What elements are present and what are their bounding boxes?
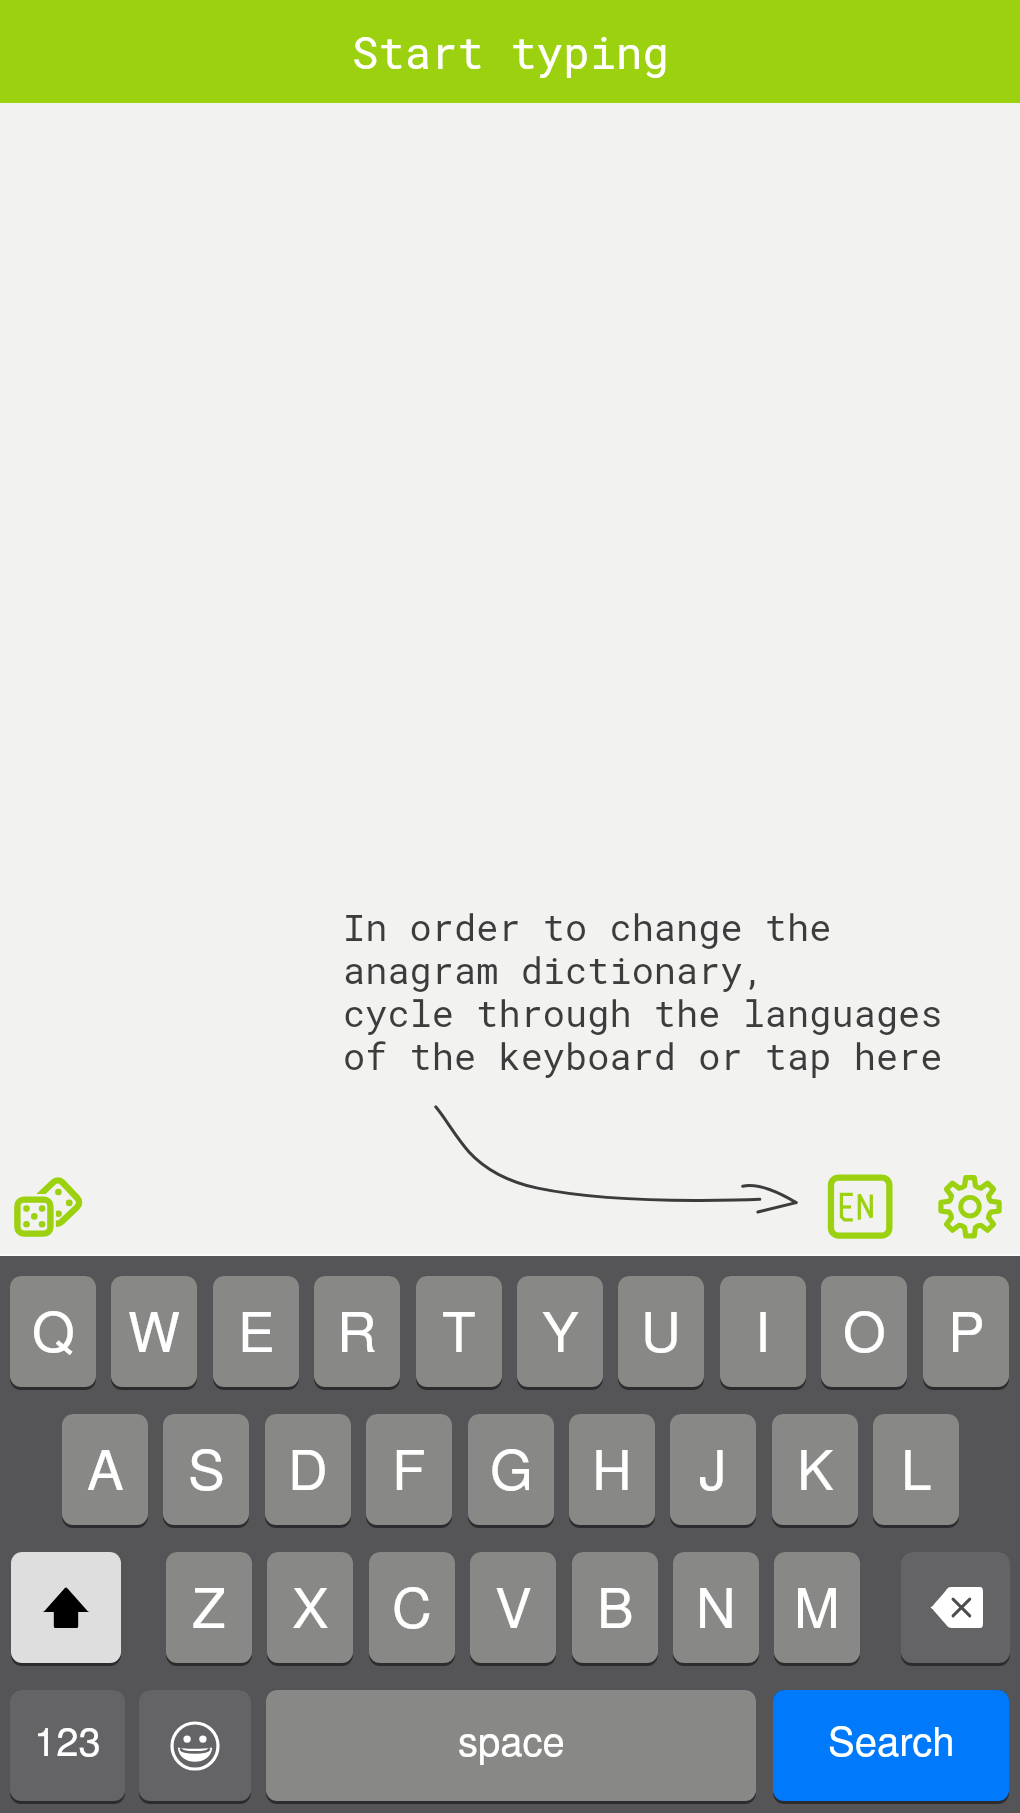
staticText: J — [699, 1427, 727, 1506]
staticText: L — [901, 1427, 932, 1506]
button[interactable]: Change keyboard language, English — [818, 1166, 902, 1248]
staticText: U — [641, 1289, 681, 1368]
button[interactable]: F — [366, 1414, 452, 1525]
staticText: H — [592, 1427, 632, 1506]
button[interactable]: Z — [166, 1552, 252, 1663]
staticText: M — [794, 1565, 840, 1644]
staticText: In order to change the anagram dictionar… — [343, 902, 943, 1080]
staticText: T — [442, 1289, 476, 1368]
button[interactable]: U — [618, 1276, 704, 1387]
button[interactable]: I — [720, 1276, 806, 1387]
button[interactable]: Search — [773, 1690, 1009, 1801]
button[interactable]: Shuffle anagram — [4, 1166, 92, 1248]
button[interactable]: L — [873, 1414, 959, 1525]
button[interactable]: A — [62, 1414, 148, 1525]
button[interactable]: Shift — [11, 1552, 121, 1663]
button[interactable]: H — [569, 1414, 655, 1525]
button[interactable]: M — [774, 1552, 860, 1663]
button[interactable]: R — [314, 1276, 400, 1387]
button[interactable]: D — [265, 1414, 351, 1525]
button[interactable]: W — [111, 1276, 197, 1387]
button[interactable]: space — [266, 1690, 756, 1801]
button[interactable]: P — [923, 1276, 1009, 1387]
button[interactable]: E — [213, 1276, 299, 1387]
staticText: R — [337, 1289, 377, 1368]
staticText: W — [128, 1289, 180, 1368]
button[interactable]: N — [673, 1552, 759, 1663]
button[interactable]: T — [416, 1276, 502, 1387]
button[interactable]: K — [772, 1414, 858, 1525]
staticText: 123 — [34, 1710, 101, 1767]
staticText: D — [288, 1427, 328, 1506]
staticText: B — [597, 1565, 634, 1644]
button[interactable]: Settings — [928, 1166, 1013, 1248]
staticText: K — [797, 1427, 834, 1506]
staticText: Y — [542, 1289, 579, 1368]
button[interactable]: Q — [10, 1276, 96, 1387]
staticText: F — [392, 1427, 426, 1506]
button[interactable]: 123 — [10, 1690, 125, 1801]
button[interactable]: J — [670, 1414, 756, 1525]
button[interactable]: G — [468, 1414, 554, 1525]
button[interactable]: B — [572, 1552, 658, 1663]
staticText: C — [392, 1565, 432, 1644]
staticText: Search — [828, 1710, 955, 1767]
staticText: Q — [32, 1289, 75, 1368]
staticText: S — [188, 1427, 225, 1506]
staticText: V — [495, 1565, 532, 1644]
staticText: G — [490, 1427, 533, 1506]
button[interactable]: Start typing — [0, 0, 1020, 103]
staticText: O — [843, 1289, 886, 1368]
button[interactable]: O — [821, 1276, 907, 1387]
button[interactable]: Y — [517, 1276, 603, 1387]
staticText: A — [87, 1427, 124, 1506]
staticText: P — [948, 1289, 985, 1368]
staticText: Z — [192, 1565, 226, 1644]
staticText: I — [755, 1289, 771, 1368]
button[interactable]: X — [267, 1552, 353, 1663]
staticText: N — [696, 1565, 736, 1644]
button[interactable]: S — [163, 1414, 249, 1525]
staticText: E — [238, 1289, 275, 1368]
button[interactable]: C — [369, 1552, 455, 1663]
button[interactable]: Backspace — [901, 1552, 1010, 1663]
button[interactable]: V — [470, 1552, 556, 1663]
button[interactable]: Emoji — [139, 1690, 251, 1801]
staticText: space — [458, 1710, 565, 1767]
staticText: X — [292, 1565, 329, 1644]
staticText: Start typing — [352, 23, 669, 81]
